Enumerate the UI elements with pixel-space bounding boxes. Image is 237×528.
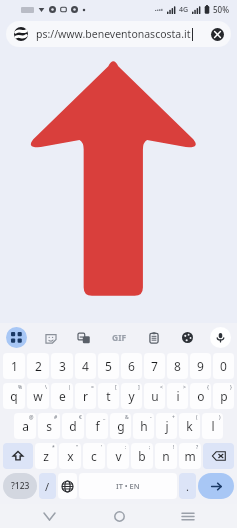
staticText: IT • EN — [116, 481, 140, 491]
staticText: _ — [103, 414, 106, 421]
button[interactable]: Clipboard — [143, 327, 164, 348]
staticText: c — [91, 448, 97, 464]
button[interactable]: Themes — [177, 327, 198, 348]
staticText: [ — [115, 384, 117, 391]
staticText: } — [230, 384, 232, 391]
button[interactable]: Clear text — [207, 24, 227, 44]
button[interactable]: d — [62, 413, 84, 439]
button[interactable]: r — [75, 383, 96, 409]
staticText: 2 — [35, 358, 42, 374]
staticText: g — [117, 418, 125, 434]
button[interactable]: n — [155, 443, 177, 469]
staticText: f — [95, 418, 100, 434]
button[interactable]: GIF — [107, 327, 131, 348]
button[interactable]: z — [35, 443, 57, 469]
staticText: 0 — [220, 358, 227, 374]
button[interactable]: j — [156, 413, 177, 439]
button[interactable]: Change language — [58, 473, 77, 499]
staticText: 3 — [59, 358, 66, 374]
button[interactable]: o — [190, 383, 211, 409]
button[interactable]: c — [83, 443, 105, 469]
staticText: 4G — [179, 5, 189, 15]
button[interactable]: x — [59, 443, 81, 469]
staticText: ' — [101, 444, 103, 451]
button[interactable]: 3 — [51, 353, 73, 379]
button[interactable]: s — [38, 413, 60, 439]
button[interactable]: 1 — [3, 353, 25, 379]
button[interactable]: l — [202, 413, 223, 439]
staticText: h — [140, 418, 148, 434]
staticText: | — [68, 384, 71, 391]
staticText: > — [183, 384, 186, 391]
button[interactable]: 0 — [213, 353, 234, 379]
button[interactable]: m — [179, 443, 201, 469]
staticText: p — [220, 388, 228, 404]
button[interactable]: 4 — [75, 353, 96, 379]
button[interactable]: f — [86, 413, 108, 439]
button[interactable]: v — [107, 443, 129, 469]
button[interactable]: Go — [198, 473, 234, 499]
button[interactable]: Shift — [3, 443, 33, 469]
button[interactable]: ?123 — [3, 473, 37, 499]
staticText: € — [79, 414, 82, 421]
button[interactable]: 2 — [27, 353, 49, 379]
staticText: n — [162, 448, 170, 464]
staticText: ] — [138, 384, 140, 391]
button[interactable]: Back — [29, 504, 69, 528]
button[interactable]: Site info — [6, 21, 231, 47]
button[interactable]: 6 — [121, 353, 142, 379]
staticText: u — [151, 388, 159, 404]
button[interactable]: Stickers — [40, 327, 61, 348]
button[interactable]: Recent apps — [168, 504, 208, 528]
button[interactable]: 9 — [190, 353, 211, 379]
staticText: q — [10, 388, 18, 404]
button[interactable]: / — [39, 473, 56, 499]
button[interactable]: p — [213, 383, 234, 409]
staticText: 5 — [105, 358, 112, 374]
button[interactable]: 7 — [144, 353, 165, 379]
staticText: @ — [29, 414, 34, 421]
staticText: a — [22, 418, 29, 434]
button[interactable]: Translate — [73, 327, 94, 348]
staticText: 9 — [197, 358, 204, 374]
button[interactable]: i — [167, 383, 188, 409]
button[interactable]: Toolbar menu — [6, 327, 27, 348]
staticText: % — [18, 384, 23, 391]
staticText: y — [128, 388, 135, 404]
button[interactable]: u — [144, 383, 165, 409]
button[interactable]: w — [27, 383, 49, 409]
button[interactable]: 5 — [98, 353, 119, 379]
button[interactable]: Voice input — [210, 327, 231, 348]
staticText: o — [197, 388, 205, 404]
button[interactable]: g — [110, 413, 131, 439]
staticText: & — [125, 414, 129, 421]
staticText: x — [67, 448, 74, 464]
button[interactable]: q — [3, 383, 25, 409]
button[interactable]: Backspace — [203, 443, 234, 469]
button[interactable]: Site info — [14, 27, 28, 41]
staticText: - — [150, 414, 152, 421]
staticText: ! — [173, 444, 175, 451]
staticText: ?123 — [11, 480, 30, 492]
staticText: { — [207, 384, 209, 391]
button[interactable]: . — [179, 473, 196, 499]
staticText: = — [91, 384, 94, 391]
staticText: l — [211, 418, 215, 434]
button[interactable]: e — [51, 383, 73, 409]
staticText: w — [33, 388, 43, 404]
button[interactable]: y — [121, 383, 142, 409]
staticText: d — [69, 418, 77, 434]
button[interactable]: b — [131, 443, 153, 469]
button[interactable]: h — [133, 413, 154, 439]
button[interactable]: k — [179, 413, 200, 439]
staticText: 6 — [128, 358, 135, 374]
button[interactable]: 8 — [167, 353, 188, 379]
staticText: j — [165, 418, 169, 434]
staticText: \ — [45, 384, 47, 391]
button[interactable]: IT • EN — [79, 473, 177, 499]
button[interactable]: a — [14, 413, 36, 439]
button[interactable]: Home — [99, 504, 139, 528]
other: Upward arrow — [0, 50, 237, 323]
button[interactable]: t — [98, 383, 119, 409]
staticText: r — [83, 388, 88, 404]
